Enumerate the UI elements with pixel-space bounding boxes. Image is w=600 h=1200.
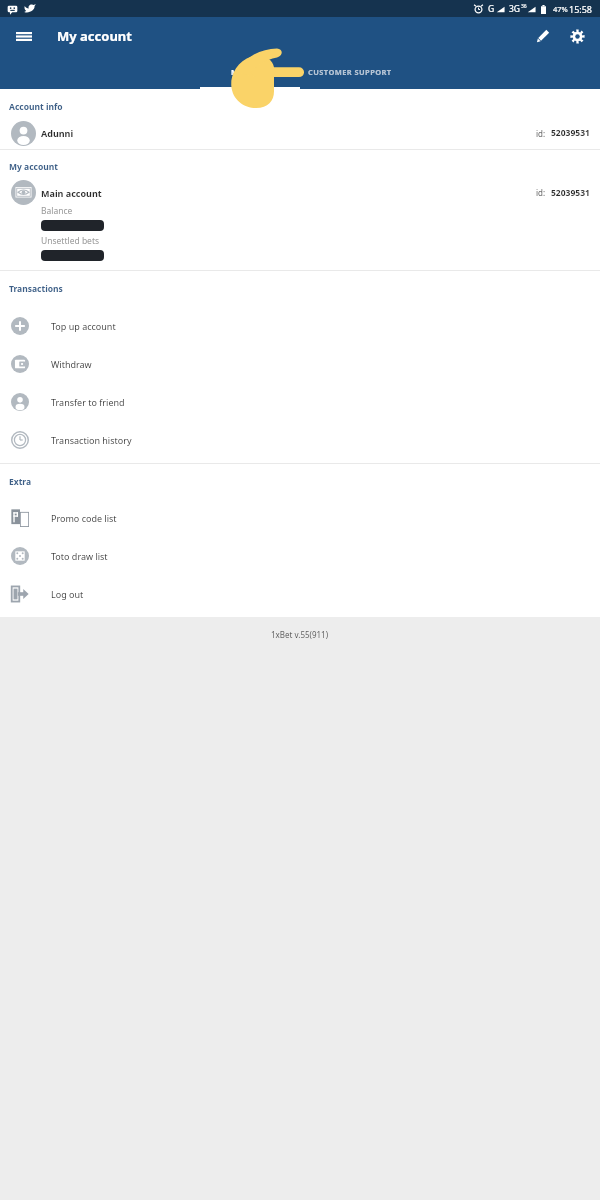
staticText: Toto draw list xyxy=(51,550,108,562)
staticText: 3G xyxy=(509,3,521,15)
staticText: 47% xyxy=(553,4,568,14)
button[interactable]: Edit profile xyxy=(527,22,559,54)
staticText: Adunni xyxy=(41,127,74,139)
button[interactable]: Settings xyxy=(561,22,593,54)
button[interactable]: Toto draw list xyxy=(0,537,600,575)
staticText: Account info xyxy=(9,101,63,113)
button[interactable]: Adunni xyxy=(0,117,600,149)
staticText: Transactions xyxy=(9,283,63,295)
button[interactable]: Open navigation menu xyxy=(9,23,39,53)
staticText: My account xyxy=(57,27,132,45)
staticText: Unsettled bets xyxy=(41,235,100,246)
staticText: Extra xyxy=(9,476,32,488)
button[interactable]: Withdraw xyxy=(0,345,600,383)
staticText: Transaction history xyxy=(51,434,132,446)
staticText: id: xyxy=(536,128,546,139)
staticText: Transfer to friend xyxy=(51,396,125,408)
staticText: G xyxy=(488,3,495,15)
staticText: Log out xyxy=(51,588,84,600)
staticText: 36 xyxy=(521,3,527,10)
button[interactable]: Transfer to friend xyxy=(0,383,600,421)
button[interactable]: Log out xyxy=(0,575,600,613)
staticText: Promo code list xyxy=(51,512,117,524)
staticText: 52039531 xyxy=(551,187,590,199)
staticText: Balance xyxy=(41,205,73,216)
staticText: CUSTOMER SUPPORT xyxy=(308,67,392,77)
button[interactable]: Main account xyxy=(0,178,600,270)
staticText: MY ACCOUNT xyxy=(231,67,286,77)
staticText: 1xBet v.55(911) xyxy=(271,629,329,640)
button[interactable]: CUSTOMER SUPPORT xyxy=(300,59,400,89)
button[interactable]: Promo code list xyxy=(0,499,600,537)
staticText: My account xyxy=(9,161,58,173)
button[interactable]: Top up account xyxy=(0,307,600,345)
staticText: Top up account xyxy=(51,320,116,332)
staticText: Withdraw xyxy=(51,358,92,370)
staticText: Main account xyxy=(41,187,102,199)
button[interactable]: MY ACCOUNT xyxy=(200,59,300,89)
button[interactable]: Transaction history xyxy=(0,421,600,459)
staticText: 52039531 xyxy=(551,127,590,139)
staticText: 15:58 xyxy=(569,3,593,15)
staticText: id: xyxy=(536,187,546,198)
